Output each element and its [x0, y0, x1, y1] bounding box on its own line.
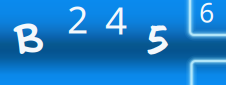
staticText: 6: [199, 0, 214, 30]
staticText: B: [14, 7, 42, 72]
staticText: 4: [105, 0, 127, 45]
staticText: 5: [147, 11, 167, 68]
staticText: 2: [67, 0, 88, 44]
